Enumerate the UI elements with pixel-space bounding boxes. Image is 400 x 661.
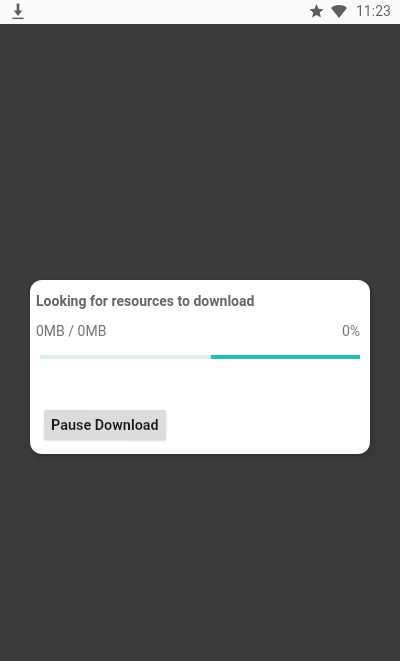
button[interactable]: Pause Download	[44, 410, 166, 440]
staticText: Looking for resources to download	[36, 293, 255, 309]
staticText: Pause Download	[51, 417, 159, 434]
staticText: 0%	[330, 323, 360, 339]
staticText: 0MB / 0MB	[36, 323, 107, 339]
other: Downloading	[11, 3, 25, 20]
staticText: 11:23	[356, 3, 391, 19]
